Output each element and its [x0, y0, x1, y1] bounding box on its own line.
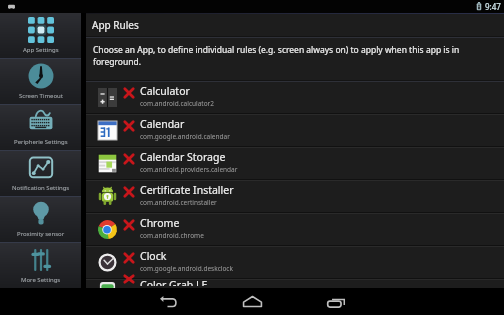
staticText: com.android.providers.calendar — [140, 165, 238, 174]
button[interactable]: Clock — [86, 247, 504, 278]
staticText: com.google.android.deskclock — [140, 264, 233, 273]
button[interactable]: Chrome — [86, 214, 504, 245]
button[interactable]: Calculator — [86, 82, 504, 113]
staticText: Clock — [140, 249, 167, 263]
staticText: More Settings — [21, 276, 61, 284]
staticText: Calendar Storage — [140, 150, 226, 164]
button[interactable]: Peripherie Settings — [0, 105, 81, 150]
button[interactable]: Color Grab LE — [86, 280, 504, 288]
staticText: App Settings — [23, 46, 59, 54]
staticText: Proximity sensor — [17, 230, 65, 238]
staticText: Calculator — [140, 84, 190, 98]
staticText: Certificate Installer — [140, 183, 234, 197]
staticText: com.google.android.calendar — [140, 132, 230, 141]
staticText: Chrome — [140, 216, 180, 230]
button[interactable]: More Settings — [0, 243, 81, 288]
button[interactable]: Recent apps — [294, 288, 378, 315]
staticText: Color Grab LE — [140, 278, 208, 286]
staticText: Choose an App, to define individual rule… — [93, 44, 497, 68]
staticText: App Rules — [92, 18, 139, 32]
staticText: Notification Settings — [12, 184, 70, 192]
button[interactable]: Calendar — [86, 115, 504, 146]
button[interactable]: App Settings — [0, 13, 81, 58]
staticText: com.android.calculator2 — [140, 99, 215, 108]
button[interactable]: Certificate Installer — [86, 181, 504, 212]
button[interactable]: Back — [126, 288, 210, 315]
staticText: Screen Timeout — [19, 92, 63, 100]
button[interactable]: Screen Timeout — [0, 59, 81, 104]
button[interactable]: Home — [210, 288, 294, 315]
staticText: Calendar — [140, 117, 185, 131]
button[interactable]: Notification Settings — [0, 151, 81, 196]
staticText: com.android.chrome — [140, 231, 204, 240]
staticText: Peripherie Settings — [14, 138, 68, 146]
staticText: com.android.certinstaller — [140, 198, 217, 207]
button[interactable]: Calendar Storage — [86, 148, 504, 179]
button[interactable]: Proximity sensor — [0, 197, 81, 242]
staticText: 9:47 — [485, 1, 501, 12]
